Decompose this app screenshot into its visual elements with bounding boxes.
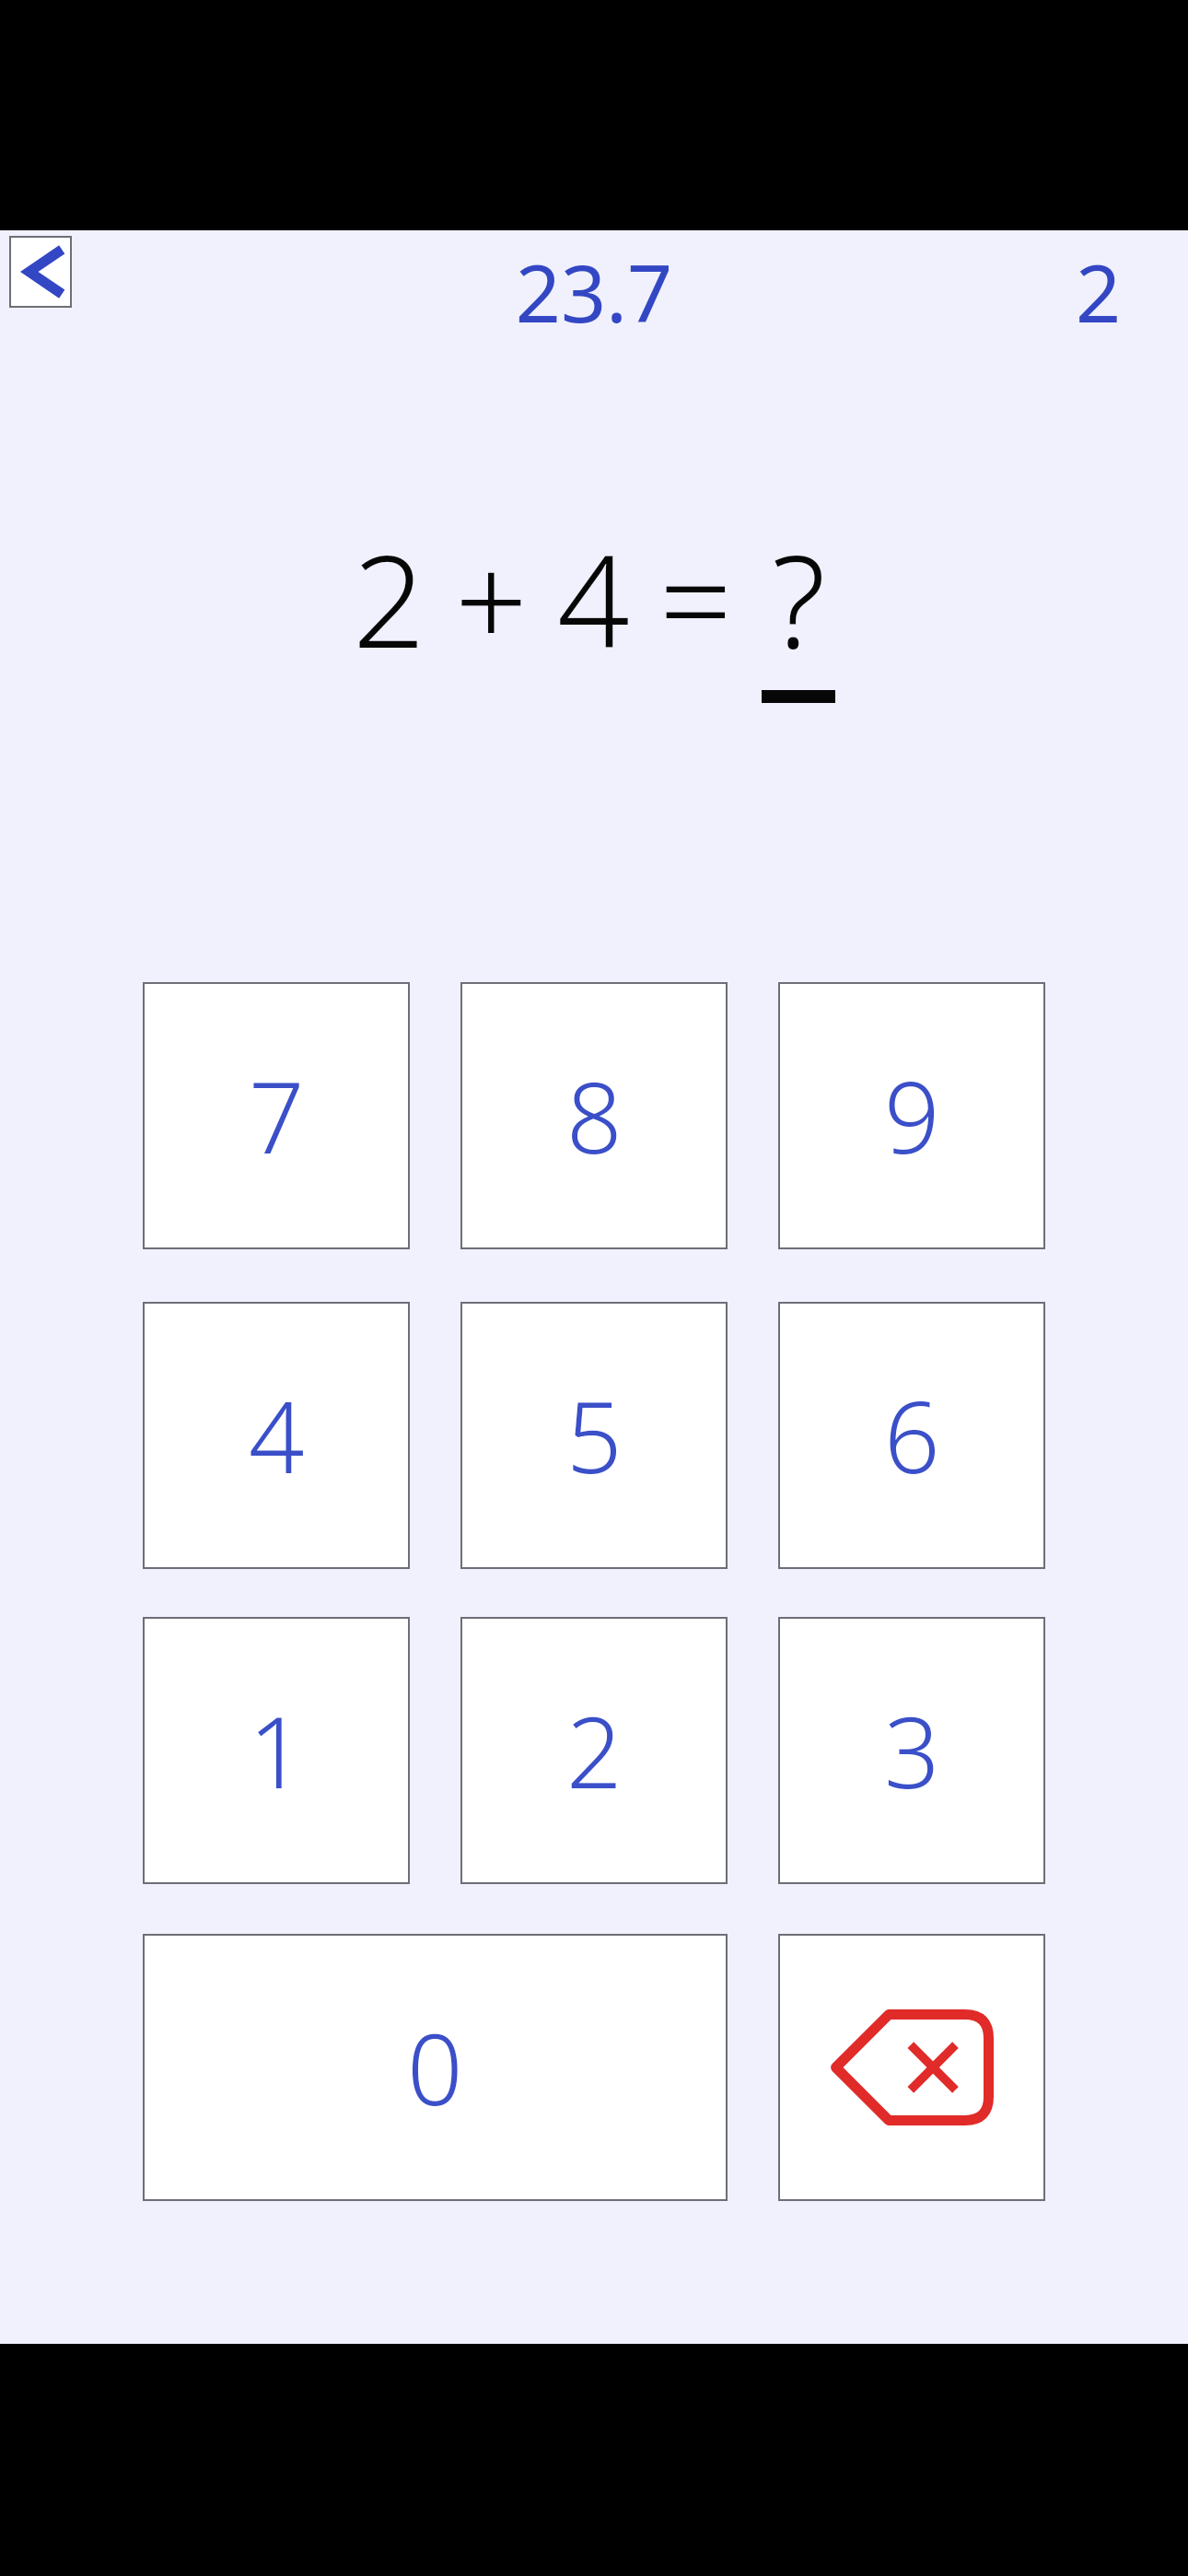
button[interactable]: 8 bbox=[460, 982, 728, 1249]
staticText: 8 bbox=[566, 1049, 623, 1182]
staticText: 4 bbox=[249, 1369, 305, 1502]
staticText: + bbox=[455, 511, 528, 685]
staticText: 3 bbox=[884, 1684, 940, 1817]
button[interactable]: Back bbox=[9, 236, 72, 308]
button[interactable]: 1 bbox=[143, 1617, 410, 1884]
staticText: 6 bbox=[884, 1369, 940, 1502]
staticText: 23.7 bbox=[0, 238, 1188, 345]
button[interactable]: 6 bbox=[778, 1302, 1045, 1569]
staticText: 2 bbox=[353, 511, 425, 685]
staticText: 2 bbox=[1076, 238, 1188, 345]
button[interactable]: 7 bbox=[143, 982, 410, 1249]
staticText: 5 bbox=[566, 1369, 623, 1502]
button[interactable]: 2 bbox=[460, 1617, 728, 1884]
staticText: 2 bbox=[566, 1684, 623, 1817]
button[interactable]: 0 bbox=[143, 1934, 728, 2201]
button[interactable]: 3 bbox=[778, 1617, 1045, 1884]
button[interactable]: Backspace bbox=[778, 1934, 1045, 2201]
button[interactable]: 9 bbox=[778, 982, 1045, 1249]
staticText: 7 bbox=[249, 1049, 305, 1182]
staticText: 0 bbox=[407, 2001, 463, 2134]
staticText: 1 bbox=[249, 1684, 305, 1817]
staticText: = bbox=[659, 511, 732, 685]
button[interactable]: 4 bbox=[143, 1302, 410, 1569]
staticText: 9 bbox=[884, 1049, 940, 1182]
button[interactable]: 5 bbox=[460, 1302, 728, 1569]
staticText: ? bbox=[772, 511, 826, 685]
staticText: 4 bbox=[557, 511, 630, 685]
